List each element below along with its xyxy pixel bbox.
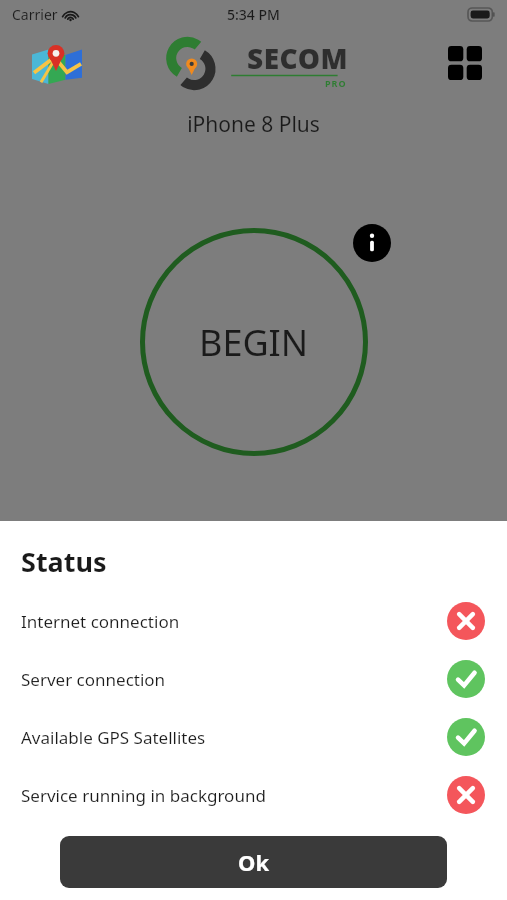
button[interactable]: Info [353,224,391,262]
button[interactable]: Ok [60,836,447,888]
staticText: Server connection [21,668,447,691]
staticText: Available GPS Satellites [21,726,447,749]
staticText: Carrier [12,5,58,24]
button[interactable]: Map [28,34,86,92]
staticText: BEGIN [199,318,309,367]
staticText: iPhone 8 Plus [187,110,320,139]
button[interactable]: SECOM [159,39,349,87]
button[interactable]: Service running in background [0,766,507,824]
staticText: Service running in background [21,784,447,807]
button[interactable]: Menu [443,41,487,85]
staticText: Internet connection [21,610,447,633]
staticText: Status [21,543,107,580]
button[interactable]: BEGIN [140,228,368,456]
button[interactable]: Available GPS Satellites [0,708,507,766]
button[interactable]: Server connection [0,650,507,708]
staticText: SECOM [247,39,349,77]
button[interactable]: Internet connection [0,592,507,650]
staticText: 5:34 PM [227,5,280,24]
staticText: Ok [238,847,270,877]
staticText: PRO [325,77,347,87]
